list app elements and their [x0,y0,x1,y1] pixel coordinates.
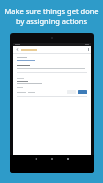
button[interactable]: Back [33,156,39,162]
button[interactable]: Back [15,47,20,52]
staticText: Make sure things get done by assigning a… [0,6,103,26]
button[interactable]: Back [13,46,91,53]
button[interactable]: Home [49,156,55,162]
button[interactable]: Recent apps [65,156,71,162]
button[interactable]: Assign [78,90,87,94]
